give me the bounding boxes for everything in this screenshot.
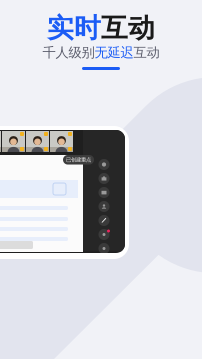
staticText: 已创建重点: [66, 156, 91, 163]
staticText: 互动: [133, 44, 159, 61]
staticText: 互动: [101, 12, 155, 44]
staticText: 无延迟: [94, 44, 133, 61]
staticText: 千人级别: [42, 44, 94, 61]
staticText: 实时: [47, 12, 101, 44]
